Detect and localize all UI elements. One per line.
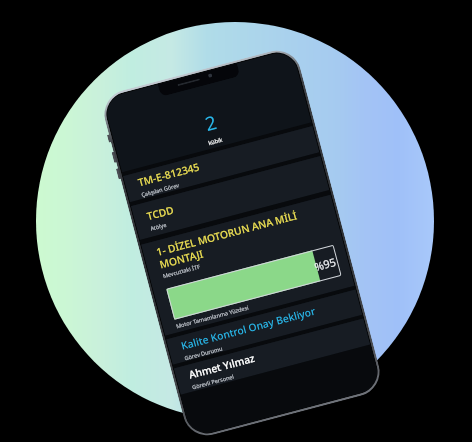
button[interactable]: TCDD <box>131 156 329 240</box>
staticText: Motor Tamamlanma Yüzdesi <box>175 304 250 330</box>
button[interactable]: Ahmet Yılmaz <box>174 318 370 395</box>
staticText: Görevli Personel <box>191 373 235 391</box>
staticText: kübik <box>207 136 224 147</box>
button[interactable]: Kalite Kontrol Onay Bekliyor <box>166 289 362 365</box>
staticText: TCDD <box>145 202 176 223</box>
staticText: 2 <box>202 109 219 137</box>
staticText: %95 <box>313 254 338 274</box>
staticText: Mevcuttaki İTF <box>162 262 202 280</box>
staticText: Atölye <box>149 221 168 233</box>
staticText: Kalite Kontrol Onay Bekliyor <box>179 304 317 353</box>
staticText: Görev Durumu <box>184 345 223 361</box>
staticText: Çalışılan Görev <box>140 181 180 199</box>
button[interactable]: TM-E-812345 <box>123 126 319 202</box>
button[interactable]: 1- DİZEL MOTORUN ANA MİLİ MONTAJI <box>141 195 355 336</box>
staticText: Ahmet Yılmaz <box>187 351 256 382</box>
staticText: TM-E-812345 <box>136 160 201 189</box>
staticText: 1- DİZEL MOTORUN ANA MİLİ MONTAJI <box>155 201 329 271</box>
